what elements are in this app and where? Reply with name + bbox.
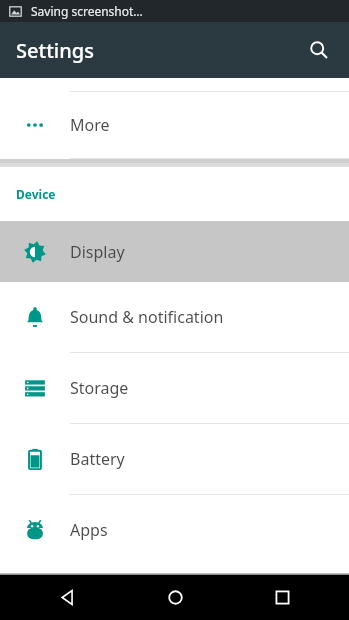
staticText: Battery [70,448,125,470]
staticText: Saving screenshot… [31,3,143,19]
button[interactable]: Apps [0,495,349,565]
staticText: Sound & notification [70,306,224,328]
button[interactable]: Storage [0,353,349,423]
button[interactable]: Battery [0,424,349,494]
button[interactable]: More [0,92,349,158]
button[interactable]: Search [299,30,339,70]
button[interactable]: Sound & notification [0,282,349,352]
staticText: More [70,114,110,136]
button[interactable]: Back [27,575,107,620]
staticText: Apps [70,519,108,541]
staticText: Settings [16,37,94,64]
staticText: Storage [70,377,129,399]
staticText: Display [70,241,125,263]
staticText: Device [16,186,56,202]
button[interactable]: Display [0,221,349,282]
button[interactable]: Home [135,575,215,620]
button[interactable]: Recent apps [242,575,322,620]
